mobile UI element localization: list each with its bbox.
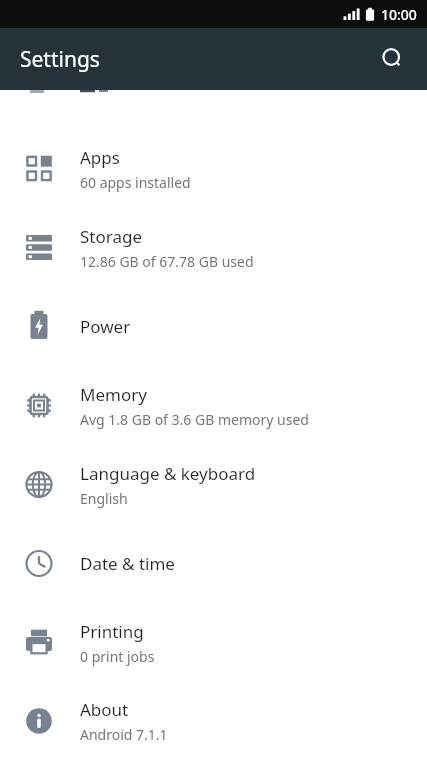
button[interactable]: Apps — [0, 129, 427, 208]
button[interactable]: Printing — [0, 603, 427, 682]
button[interactable]: Memory — [0, 366, 427, 445]
staticText: Language & keyboard — [80, 462, 256, 485]
staticText: Date & time — [80, 552, 175, 575]
staticText: English — [80, 489, 128, 508]
staticText: About — [80, 698, 129, 721]
staticText: Memory — [80, 383, 147, 406]
staticText: 60 apps installed — [80, 173, 191, 192]
staticText: Power — [80, 315, 131, 338]
staticText: 12.86 GB of 67.78 GB used — [80, 252, 254, 271]
button[interactable]: Language & keyboard — [0, 445, 427, 524]
staticText: 0 print jobs — [80, 647, 155, 666]
button[interactable]: Date & time — [0, 524, 427, 603]
button[interactable]: Power — [0, 287, 427, 366]
staticText: Android 7.1.1 — [80, 725, 168, 744]
staticText: Printing — [80, 620, 144, 643]
staticText: Storage — [80, 225, 143, 248]
staticText: Settings — [20, 45, 100, 74]
button[interactable]: Search — [369, 35, 417, 83]
button[interactable]: About — [0, 682, 427, 760]
staticText: Avg 1.8 GB of 3.6 GB memory used — [80, 410, 309, 429]
button[interactable]: Storage — [0, 208, 427, 287]
staticText: 10:00 — [381, 5, 417, 24]
staticText: Apps — [80, 146, 120, 169]
